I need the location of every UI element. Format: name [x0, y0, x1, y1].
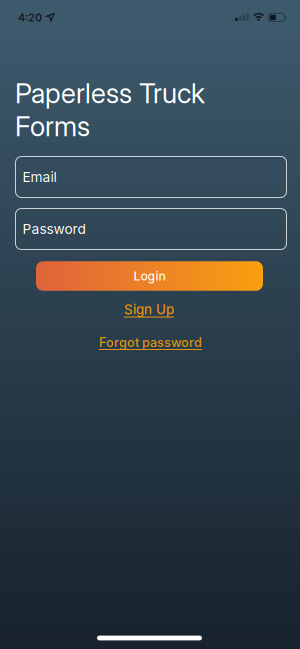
staticText: Password — [22, 221, 85, 237]
button[interactable]: Forgot password — [99, 335, 202, 350]
staticText: Paperless Truck — [15, 77, 205, 110]
staticText: Forgot password — [99, 335, 202, 350]
staticText: Email — [22, 169, 56, 185]
staticText: 4:20 — [18, 11, 42, 24]
button[interactable]: Login — [36, 261, 263, 291]
button[interactable]: Sign Up — [124, 301, 174, 317]
staticText: Sign Up — [124, 301, 174, 317]
staticText: Login — [133, 269, 165, 283]
button[interactable]: Email — [15, 156, 286, 197]
button[interactable]: Password — [15, 208, 286, 249]
staticText: Forms — [15, 110, 90, 143]
